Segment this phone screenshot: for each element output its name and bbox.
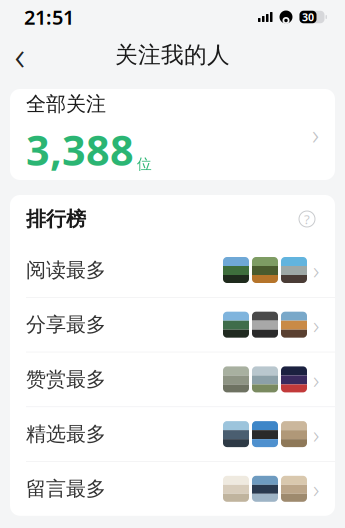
button[interactable]: 阅读最多 — [10, 243, 335, 297]
staticText: 分享最多 — [26, 312, 106, 337]
button[interactable]: 留言最多 — [10, 462, 335, 516]
staticText: ‹ — [14, 28, 25, 81]
staticText: › — [313, 309, 319, 341]
staticText: › — [313, 473, 319, 505]
staticText: 3,388 — [26, 122, 134, 177]
staticText: › — [313, 363, 319, 395]
button[interactable]: Help — [295, 207, 319, 231]
staticText: 留言最多 — [26, 476, 106, 501]
staticText: 全部关注 — [26, 92, 106, 116]
staticText: 赞赏最多 — [26, 367, 106, 392]
staticText: 21:51 — [24, 4, 74, 30]
button[interactable]: 分享最多 — [10, 298, 335, 352]
staticText: 位 — [137, 155, 152, 173]
staticText: › — [312, 117, 319, 152]
button[interactable]: 赞赏最多 — [10, 352, 335, 406]
staticText: › — [313, 418, 319, 450]
staticText: 关注我的人 — [115, 41, 230, 69]
staticText: 阅读最多 — [26, 258, 106, 282]
staticText: ? — [304, 210, 310, 228]
staticText: 排行榜 — [26, 207, 86, 231]
button[interactable]: Back — [0, 35, 40, 75]
button[interactable]: 全部关注 — [10, 89, 335, 180]
staticText: 精选最多 — [26, 422, 106, 446]
staticText: › — [313, 254, 319, 286]
staticText: 30 — [302, 10, 314, 24]
button[interactable]: 精选最多 — [10, 407, 335, 461]
